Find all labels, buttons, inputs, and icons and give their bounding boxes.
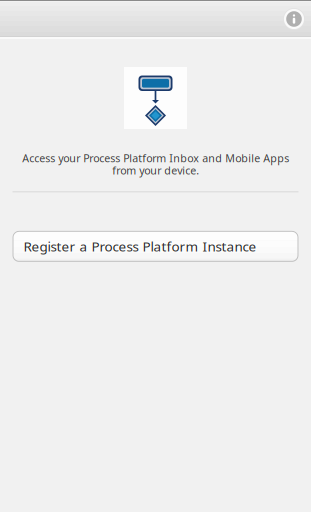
button[interactable]: Info: [277, 1, 311, 36]
staticText: Access your Process Platform Inbox and M…: [22, 151, 289, 177]
button[interactable]: Register a Process Platform Instance: [12, 230, 298, 262]
staticText: Register a Process Platform Instance: [23, 237, 256, 255]
